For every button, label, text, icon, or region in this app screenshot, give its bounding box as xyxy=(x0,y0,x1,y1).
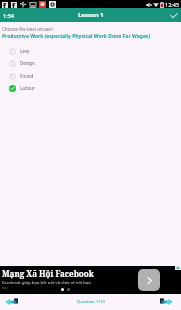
button[interactable]: Levy xyxy=(0,46,181,56)
staticText: Design xyxy=(20,60,35,66)
staticText: Question 1/10 xyxy=(77,299,105,305)
button[interactable]: Open advertisement xyxy=(138,269,160,291)
button[interactable]: Mạng Xã Hội Facebook xyxy=(0,266,181,294)
staticText: Mạng Xã Hội Facebook xyxy=(2,268,94,279)
staticText: Lesson 1 xyxy=(78,11,104,19)
staticText: 12:45 xyxy=(165,1,180,8)
button[interactable]: Found xyxy=(0,71,181,81)
staticText: Found xyxy=(20,73,34,79)
staticText: 1:54 xyxy=(3,12,14,19)
staticText: nay. xyxy=(2,286,9,290)
staticText: Labour xyxy=(20,85,36,91)
button[interactable]: Next question xyxy=(158,295,175,309)
staticText: Productive Work (especially Physical Wor… xyxy=(2,33,151,40)
staticText: Levy xyxy=(20,48,30,54)
button[interactable]: Submit answer xyxy=(167,8,181,22)
button[interactable]: Previous question xyxy=(3,295,20,309)
button[interactable]: Design xyxy=(0,58,181,68)
button[interactable]: Labour xyxy=(0,83,181,93)
staticText: Facebook giúp bạn kết nối và chia sẻ với… xyxy=(2,280,91,286)
staticText: Choose the best answer: xyxy=(2,26,54,32)
other: Ad choices xyxy=(175,266,181,270)
